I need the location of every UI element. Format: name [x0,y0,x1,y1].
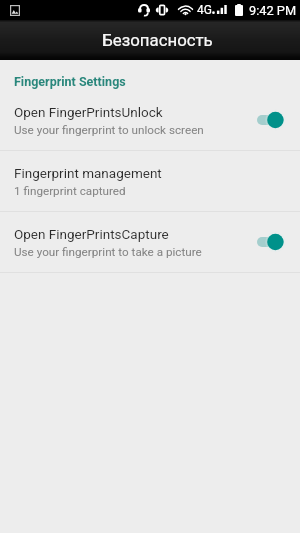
staticText: 4G [197,3,212,17]
staticText: Fingerprint management [14,165,162,181]
staticText: Open FingerPrintsUnlock [14,104,163,120]
button[interactable]: Open FingerPrintsCapture [0,212,300,272]
staticText: 9:42 PM [249,3,297,18]
staticText: Open FingerPrintsCapture [14,226,169,242]
staticText: 1 fingerprint captured [14,184,126,198]
button[interactable]: Toggle setting [256,231,284,253]
staticText: Fingerprint Settings [14,74,126,89]
button[interactable]: Open FingerPrintsUnlock [0,90,300,150]
staticText: Безопасность [102,30,213,50]
staticText: Use your fingerprint to unlock screen [14,123,204,137]
staticText: Use your fingerprint to take a picture [14,245,202,259]
button[interactable]: Fingerprint management [0,151,300,211]
button[interactable]: Toggle setting [256,109,284,131]
